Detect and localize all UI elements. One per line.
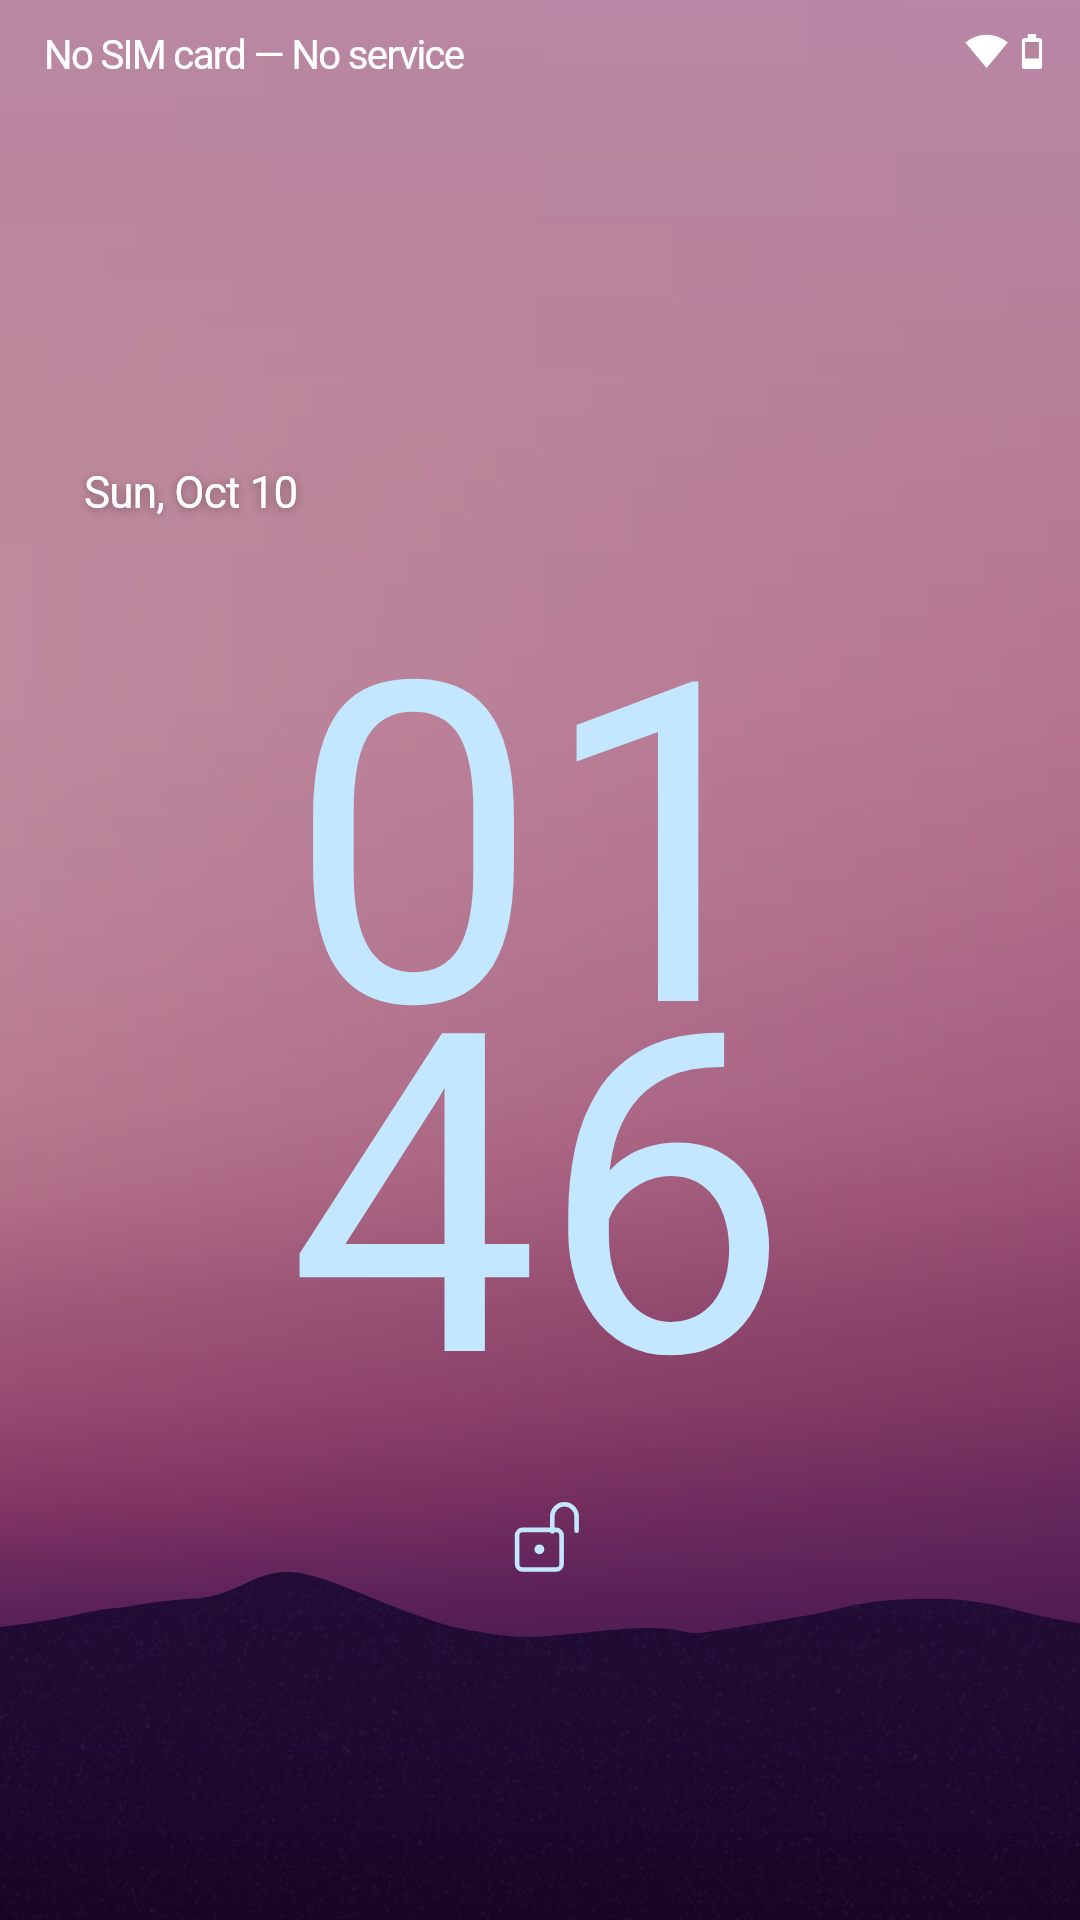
other: Battery level bbox=[1016, 28, 1048, 76]
staticText: Sun, Oct 10 bbox=[84, 467, 298, 519]
button[interactable]: Unlock bbox=[500, 1490, 590, 1580]
staticText: 01 46 bbox=[288, 586, 791, 1460]
staticText: No SIM card — No service bbox=[44, 32, 464, 79]
other: Wi-Fi signal bbox=[960, 28, 1012, 76]
